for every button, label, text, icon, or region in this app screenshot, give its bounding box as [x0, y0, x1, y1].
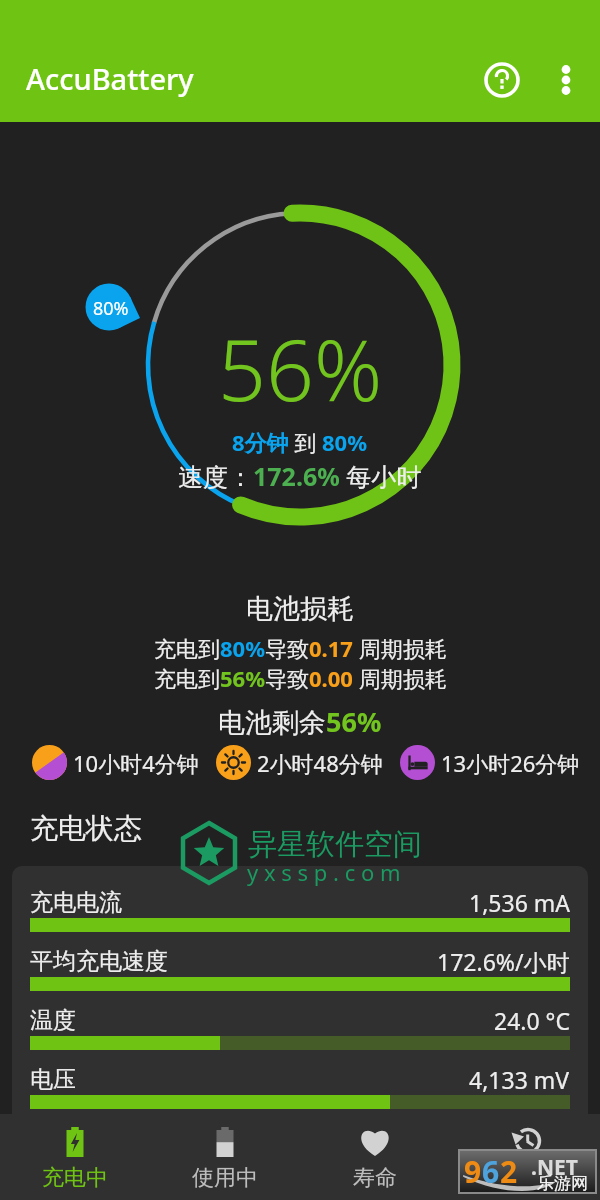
button[interactable]: 使用中	[150, 1114, 300, 1192]
staticText: 8分钟 到 80%	[232, 427, 368, 457]
button[interactable]: 10小时4分钟	[32, 745, 199, 780]
staticText: AccuBattery	[26, 59, 194, 98]
staticText: 寿命	[353, 1164, 397, 1192]
staticText: 历史	[503, 1164, 547, 1192]
staticText: 平均充电速度	[30, 947, 168, 976]
button[interactable]: 寿命	[300, 1114, 450, 1192]
staticText: 充电状态	[30, 811, 142, 846]
staticText: y x s s p . c o m	[247, 857, 401, 887]
staticText: 1,536 mA	[469, 887, 570, 918]
staticText: 2小时48分钟	[257, 748, 383, 778]
button[interactable]: 充电中	[0, 1114, 150, 1192]
button[interactable]: 13小时26分钟	[400, 745, 580, 780]
staticText: 6	[482, 1151, 500, 1192]
staticText: 充电电流	[30, 888, 122, 917]
button[interactable]: 温度	[12, 996, 588, 1055]
button[interactable]: 电压	[12, 1055, 588, 1114]
staticText: 9	[464, 1151, 482, 1192]
staticText: 10小时4分钟	[73, 748, 199, 778]
staticText: 24.0 °C	[494, 1005, 570, 1036]
staticText: 2	[500, 1151, 518, 1192]
staticText: 电压	[30, 1065, 76, 1094]
staticText: 80%	[93, 296, 129, 321]
button[interactable]: 平均充电速度	[12, 937, 588, 996]
button[interactable]: More options	[542, 56, 590, 104]
staticText: 乐游网	[537, 1173, 588, 1194]
staticText: 使用中	[192, 1164, 258, 1192]
staticText: 电池损耗	[246, 592, 354, 626]
staticText: 速度：172.6% 每小时	[178, 459, 422, 493]
staticText: 电池剩余56%	[218, 703, 382, 740]
staticText: 充电到80%导致0.17 周期损耗	[154, 633, 447, 663]
staticText: 充电中	[42, 1164, 108, 1192]
button[interactable]: Help	[478, 56, 526, 104]
staticText: 4,133 mV	[469, 1064, 570, 1095]
staticText: 13小时26分钟	[441, 748, 580, 778]
staticText: 充电到56%导致0.00 周期损耗	[154, 663, 447, 693]
staticText: 温度	[30, 1006, 76, 1035]
staticText: 56%	[218, 311, 383, 425]
staticText: 异星软件空间	[248, 826, 422, 863]
button[interactable]: 历史	[450, 1114, 600, 1192]
button[interactable]: 2小时48分钟	[216, 745, 383, 780]
button[interactable]: 充电电流	[12, 878, 588, 937]
staticText: .NET	[531, 1153, 578, 1182]
staticText: 172.6%/小时	[437, 946, 570, 977]
